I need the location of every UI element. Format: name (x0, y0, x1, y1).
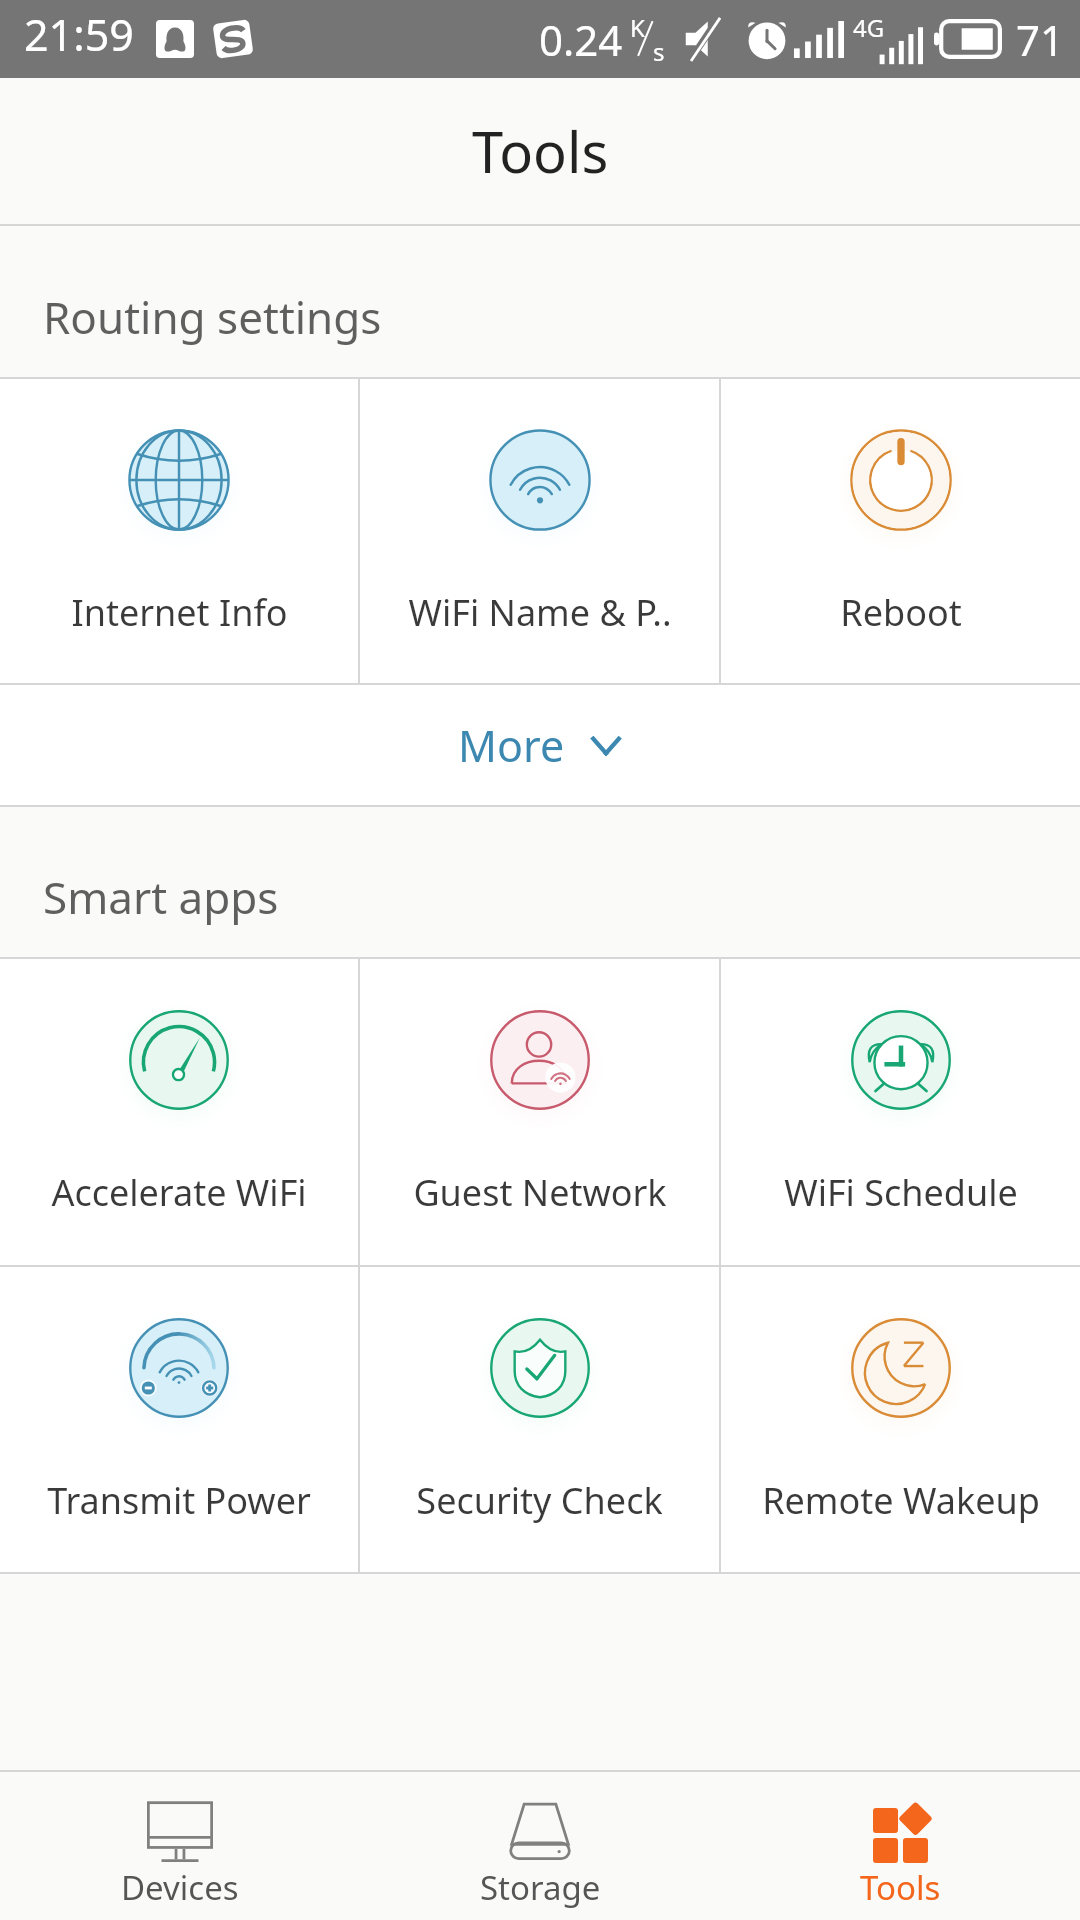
button[interactable]: Storage (360, 1779, 720, 1920)
staticText: Security Check (416, 1476, 663, 1525)
staticText: Transmit Power (47, 1476, 311, 1525)
button[interactable]: More (0, 685, 1080, 805)
staticText: Accelerate WiFi (51, 1168, 307, 1217)
staticText: s (653, 35, 665, 67)
staticText: Smart apps (43, 867, 279, 927)
button[interactable]: WiFi Schedule (721, 959, 1080, 1265)
button[interactable]: Guest Network (360, 959, 719, 1265)
button[interactable]: Devices (0, 1779, 360, 1920)
staticText: Storage (480, 1865, 601, 1910)
staticText: WiFi Name & P.. (408, 588, 672, 637)
staticText: 21:59 (24, 5, 134, 64)
button[interactable]: Transmit Power (0, 1267, 358, 1572)
staticText: K (630, 11, 645, 43)
staticText: 4G (853, 11, 885, 41)
button[interactable]: Tools (720, 1779, 1080, 1920)
other: Storage (507, 1802, 573, 1860)
staticText: Reboot (840, 588, 962, 637)
staticText: Routing settings (43, 287, 382, 347)
staticText: Guest Network (413, 1168, 667, 1217)
button[interactable]: Security Check (360, 1267, 719, 1572)
staticText: 0.24 (539, 11, 623, 68)
staticText: Devices (121, 1865, 239, 1910)
button[interactable]: Remote Wakeup (721, 1267, 1080, 1572)
staticText: Tools (472, 113, 609, 189)
button[interactable]: Internet Info (0, 379, 358, 683)
staticText: WiFi Schedule (784, 1168, 1018, 1217)
staticText: Remote Wakeup (762, 1476, 1040, 1525)
button[interactable]: Accelerate WiFi (0, 959, 358, 1265)
staticText: Internet Info (71, 588, 288, 637)
other: Tools (873, 1804, 928, 1858)
staticText: Tools (860, 1865, 941, 1910)
other: Devices (147, 1798, 213, 1864)
staticText: More (458, 716, 565, 775)
button[interactable]: WiFi Name & P.. (360, 379, 719, 683)
staticText: 71 (1016, 11, 1065, 68)
button[interactable]: Reboot (721, 379, 1080, 683)
